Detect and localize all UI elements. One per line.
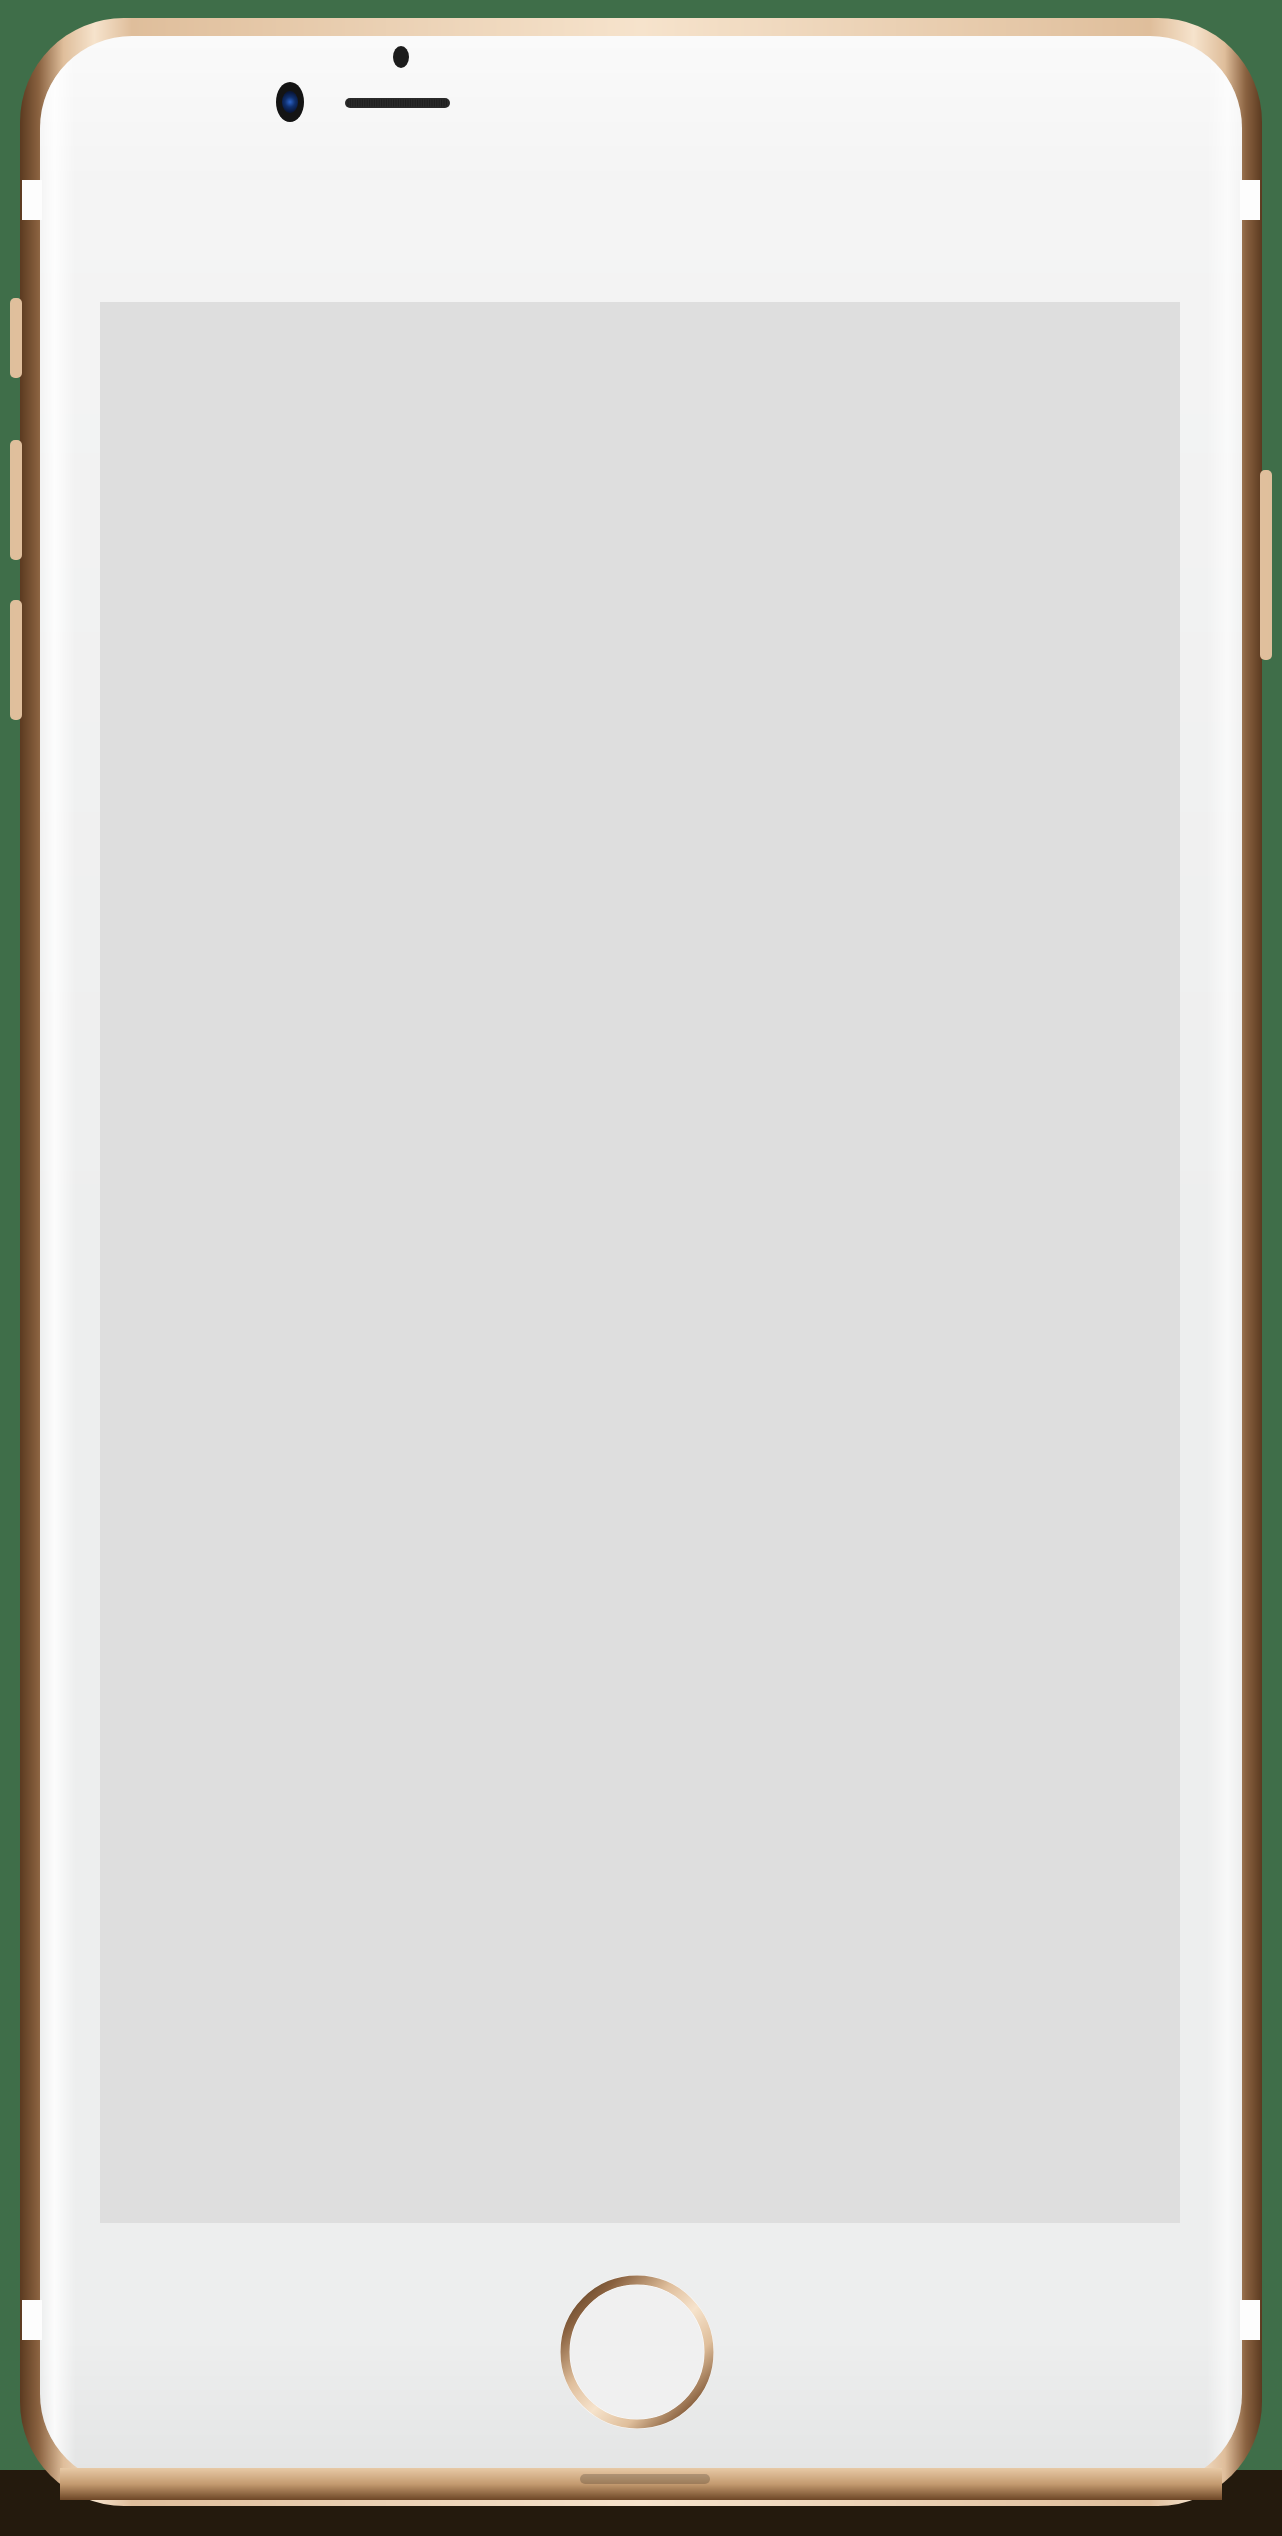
button[interactable]: iPhone device mockup [0, 0, 1282, 2536]
